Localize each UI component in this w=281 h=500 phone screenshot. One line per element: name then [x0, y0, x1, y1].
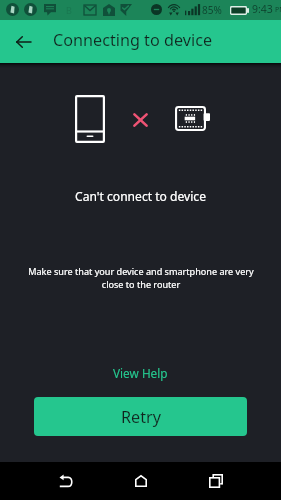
staticText: 85%: [202, 3, 222, 17]
button[interactable]: Home: [117, 462, 164, 500]
button[interactable]: Back: [42, 462, 89, 500]
staticText: 9:43: [252, 2, 273, 16]
button[interactable]: Retry: [34, 397, 247, 436]
button[interactable]: View Help: [99, 360, 182, 386]
staticText: Make sure that your device and smartphon…: [28, 265, 254, 291]
staticText: B: [66, 4, 72, 16]
staticText: PM: [275, 5, 281, 15]
button[interactable]: Recent apps: [192, 462, 239, 500]
staticText: Retry: [121, 406, 161, 428]
button[interactable]: Back: [2, 20, 45, 63]
staticText: View Help: [113, 365, 168, 381]
staticText: Connecting to device: [53, 29, 213, 51]
staticText: Can't connect to device: [75, 188, 206, 204]
